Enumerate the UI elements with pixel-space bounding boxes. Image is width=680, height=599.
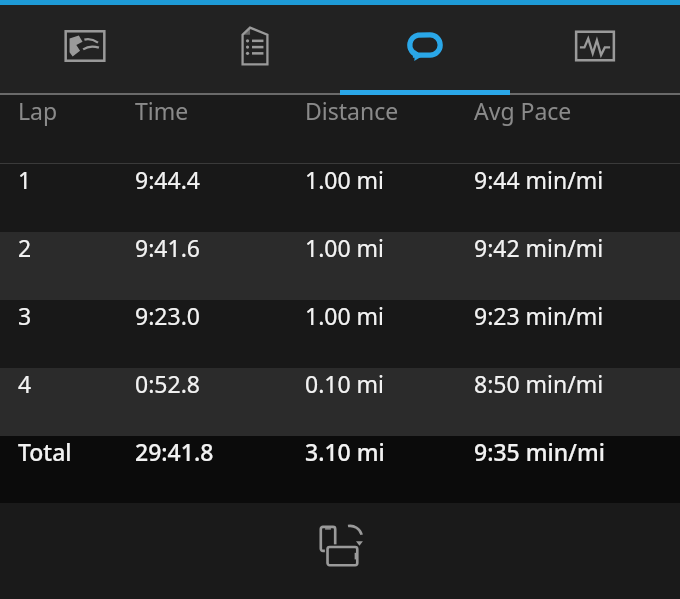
staticText: 0.10 mi	[305, 368, 385, 399]
staticText: Time	[135, 95, 189, 126]
staticText: 1	[18, 164, 32, 195]
staticText: 4	[18, 368, 32, 399]
staticText: 9:41.6	[135, 232, 200, 263]
staticText: 3	[18, 300, 32, 331]
button[interactable]: Total	[0, 436, 680, 503]
button[interactable]: Rotate screen	[306, 513, 374, 581]
staticText: 9:44 min/mi	[474, 164, 604, 195]
staticText: 1.00 mi	[305, 232, 385, 263]
staticText: 9:35 min/mi	[474, 436, 605, 467]
button[interactable]: Laps	[340, 5, 510, 95]
staticText: 2	[18, 232, 32, 263]
staticText: 9:23 min/mi	[474, 300, 604, 331]
staticText: 9:42 min/mi	[474, 232, 604, 263]
staticText: Avg Pace	[474, 95, 572, 126]
button[interactable]: 2	[0, 232, 680, 300]
button[interactable]: 3	[0, 300, 680, 368]
button[interactable]: Heart rate	[510, 5, 680, 95]
staticText: 29:41.8	[135, 436, 214, 467]
button[interactable]: Map	[0, 5, 170, 95]
staticText: 1.00 mi	[305, 300, 385, 331]
button[interactable]: 4	[0, 368, 680, 436]
staticText: 0:52.8	[135, 368, 200, 399]
staticText: 1.00 mi	[305, 164, 385, 195]
staticText: Distance	[305, 95, 399, 126]
button[interactable]: 1	[0, 164, 680, 232]
staticText: 8:50 min/mi	[474, 368, 604, 399]
button[interactable]: Splits	[170, 5, 340, 95]
staticText: 9:23.0	[135, 300, 200, 331]
staticText: Lap	[18, 95, 58, 126]
staticText: 3.10 mi	[305, 436, 385, 467]
staticText: 9:44.4	[135, 164, 200, 195]
staticText: Total	[18, 436, 72, 467]
